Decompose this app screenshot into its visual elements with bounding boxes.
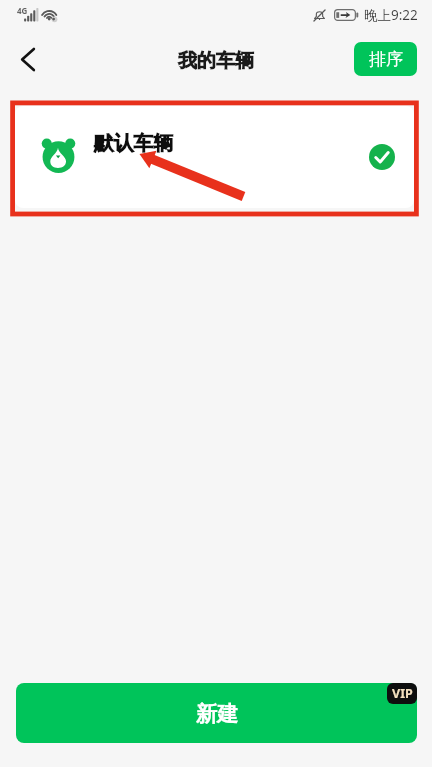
staticText: 新建	[196, 701, 238, 727]
staticText: 排序	[369, 49, 403, 70]
button[interactable]: 默认车辆	[15, 106, 414, 208]
staticText: 默认车辆	[94, 131, 174, 156]
button[interactable]: 新建	[16, 683, 417, 743]
staticText: 晚上9:22	[364, 6, 418, 24]
button[interactable]: 返回	[4, 35, 52, 83]
staticText: 我的车辆	[178, 49, 254, 73]
button[interactable]: 排序	[354, 42, 417, 76]
staticText: VIP	[392, 685, 413, 702]
staticText: 4G	[17, 5, 28, 16]
